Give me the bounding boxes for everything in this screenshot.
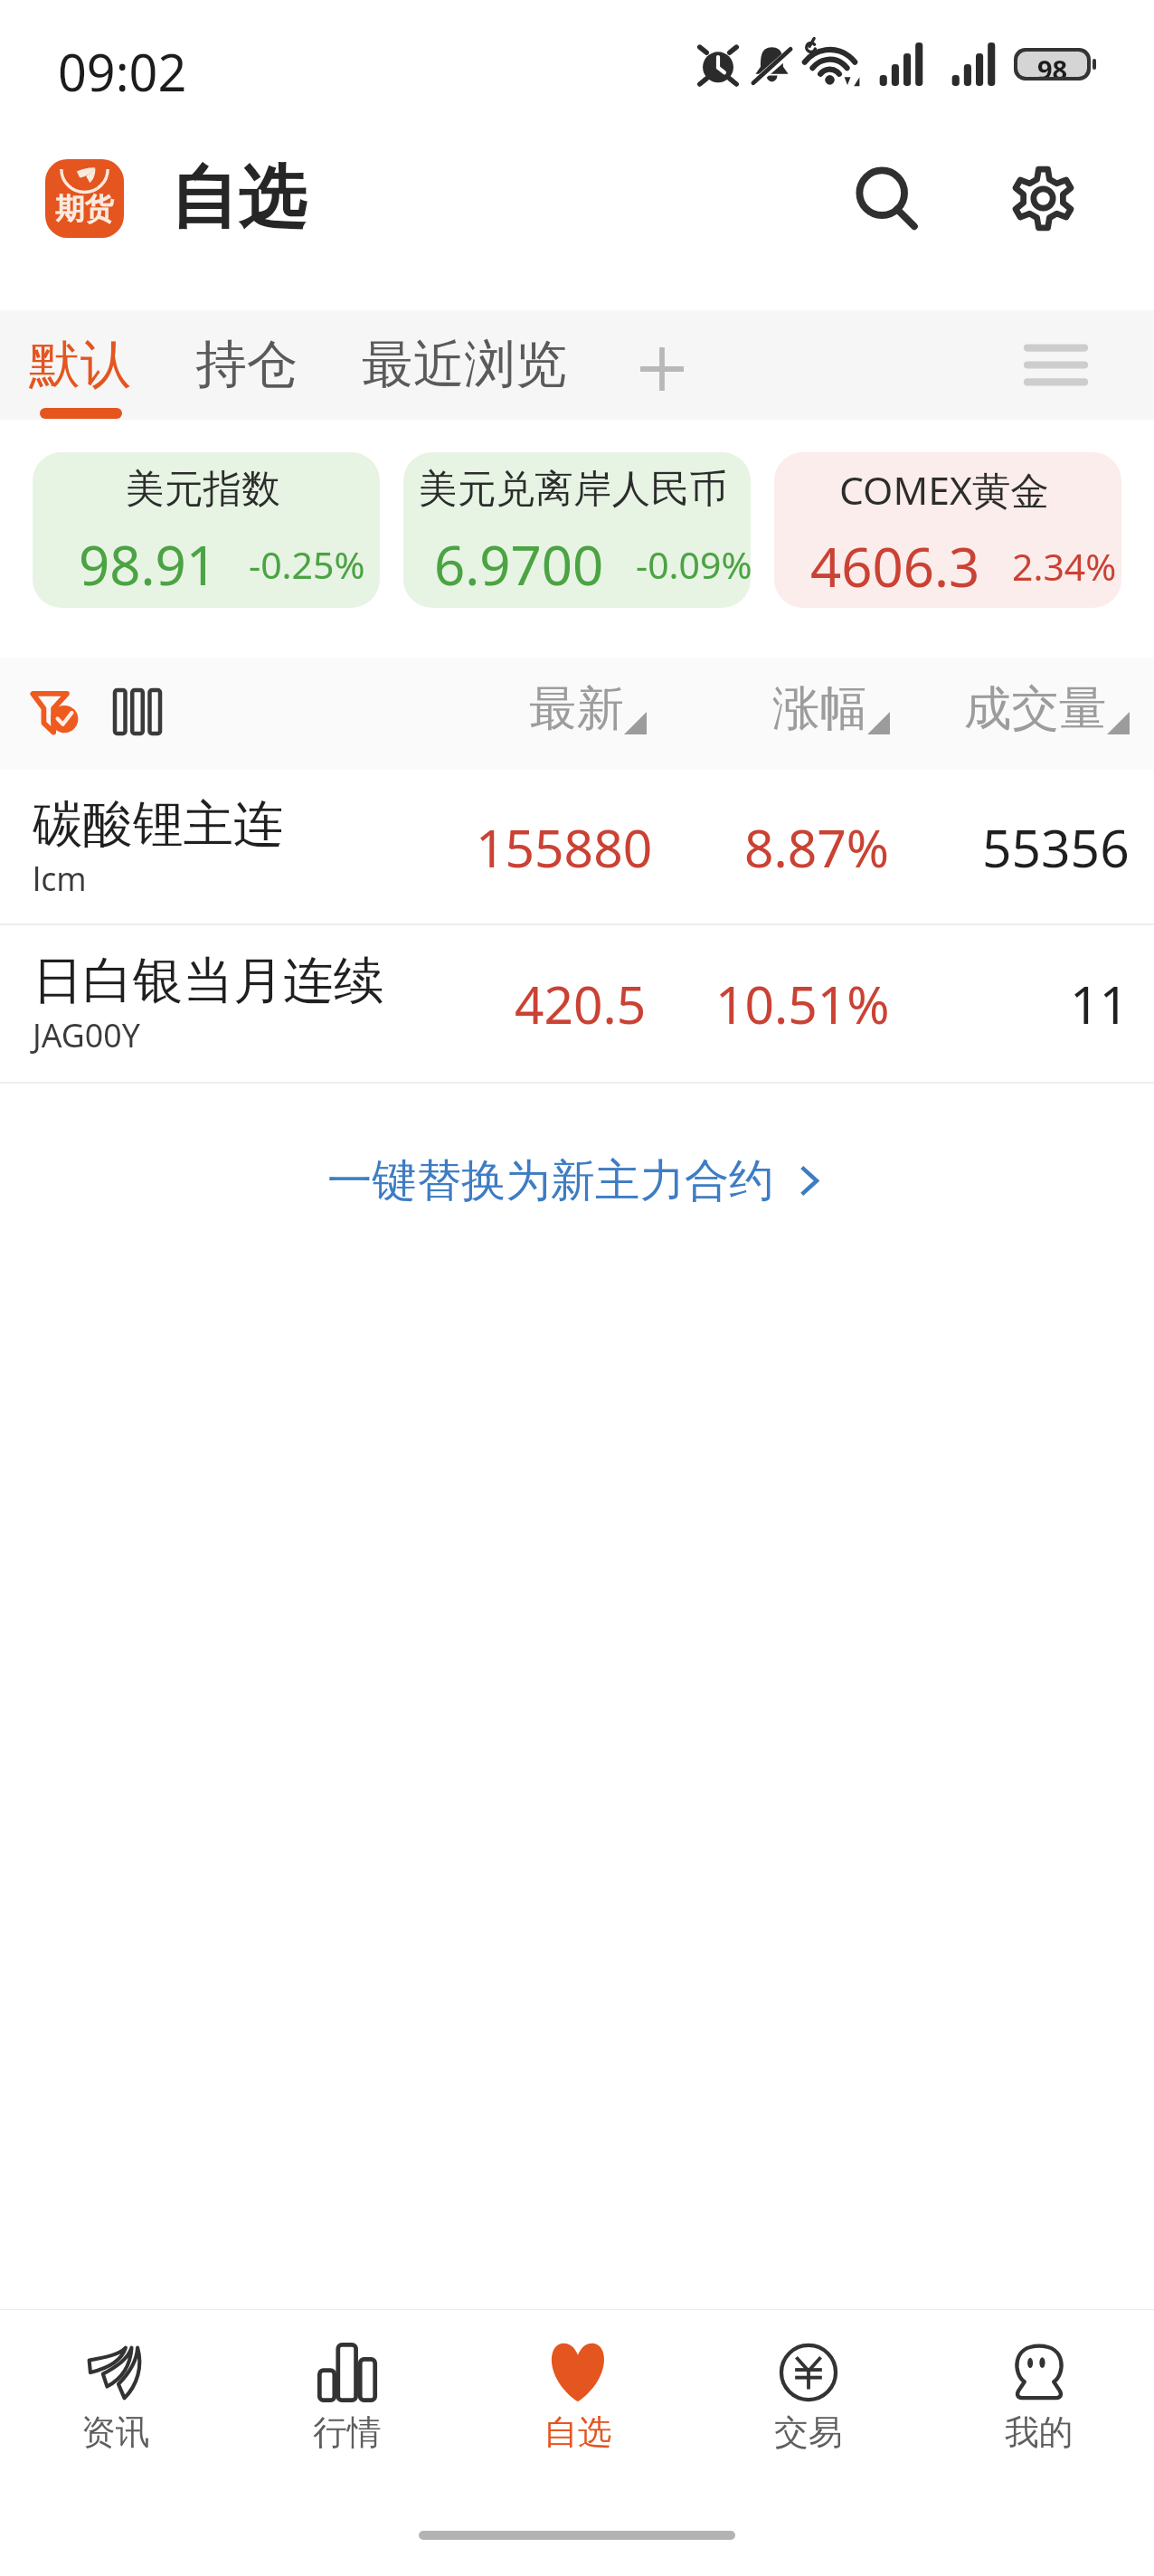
- staticText: 4606.3: [810, 529, 980, 603]
- staticText: 155880: [476, 812, 647, 882]
- staticText: 最新: [529, 678, 624, 738]
- staticText: 涨幅: [772, 678, 867, 738]
- staticText: lcm: [33, 857, 87, 901]
- button[interactable]: 默认: [0, 332, 164, 420]
- staticText: 自选: [544, 2411, 612, 2455]
- staticText: 交易: [774, 2411, 843, 2455]
- button[interactable]: 最近浏览: [330, 332, 599, 420]
- staticText: 自选: [170, 156, 307, 241]
- staticText: 行情: [313, 2411, 382, 2455]
- button[interactable]: 自选: [462, 2343, 693, 2455]
- staticText: 98: [1037, 52, 1068, 77]
- staticText: 55356: [982, 812, 1130, 882]
- staticText: JAG00Y: [33, 1013, 140, 1057]
- button[interactable]: 美元兑离岸人民币: [403, 452, 751, 608]
- button[interactable]: 成交量: [890, 664, 1130, 753]
- staticText: 日白银当月连续: [33, 950, 384, 1013]
- button[interactable]: Add group: [599, 318, 725, 420]
- button[interactable]: 持仓: [164, 332, 330, 420]
- staticText: 420.5: [515, 969, 647, 1038]
- staticText: 期货: [55, 191, 114, 228]
- button[interactable]: COMEX黄金: [774, 452, 1121, 608]
- staticText: 持仓: [195, 332, 298, 396]
- staticText: 11: [1070, 969, 1130, 1038]
- staticText: 98.91: [79, 527, 217, 601]
- staticText: 默认: [29, 332, 132, 396]
- staticText: 一键替换为新主力合约: [327, 1152, 774, 1208]
- staticText: 2.34%: [1012, 541, 1117, 592]
- button[interactable]: 资讯: [0, 2343, 232, 2455]
- button[interactable]: Search: [820, 132, 953, 265]
- button[interactable]: 日白银当月连续: [0, 925, 1154, 1082]
- button[interactable]: Columns: [102, 677, 172, 746]
- button[interactable]: 行情: [232, 2343, 462, 2455]
- button[interactable]: 交易: [693, 2343, 923, 2455]
- button[interactable]: 最新: [476, 664, 647, 753]
- button[interactable]: App logo: [45, 159, 124, 238]
- staticText: 美元指数: [126, 465, 280, 514]
- staticText: 成交量: [964, 678, 1107, 738]
- staticText: 09:02: [58, 38, 187, 107]
- staticText: 碳酸锂主连: [33, 793, 284, 857]
- staticText: 我的: [1005, 2411, 1074, 2455]
- staticText: -0.09%: [636, 539, 751, 590]
- staticText: COMEX黄金: [839, 463, 1050, 516]
- staticText: -0.25%: [249, 539, 365, 590]
- staticText: 10.51%: [715, 969, 890, 1038]
- staticText: 8.87%: [744, 812, 890, 882]
- button[interactable]: Settings: [977, 132, 1110, 265]
- button[interactable]: 涨幅: [647, 664, 890, 753]
- staticText: 资讯: [81, 2411, 150, 2455]
- staticText: 6.9700: [434, 527, 604, 601]
- staticText: 美元兑离岸人民币: [419, 465, 728, 514]
- button[interactable]: Filter: [20, 677, 90, 746]
- button[interactable]: 一键替换为新主力合约: [0, 1084, 1154, 1239]
- button[interactable]: Manage groups: [998, 310, 1112, 420]
- button[interactable]: 美元指数: [33, 452, 380, 608]
- button[interactable]: 碳酸锂主连: [0, 770, 1154, 923]
- button[interactable]: 我的: [923, 2343, 1154, 2455]
- staticText: 最近浏览: [362, 332, 567, 396]
